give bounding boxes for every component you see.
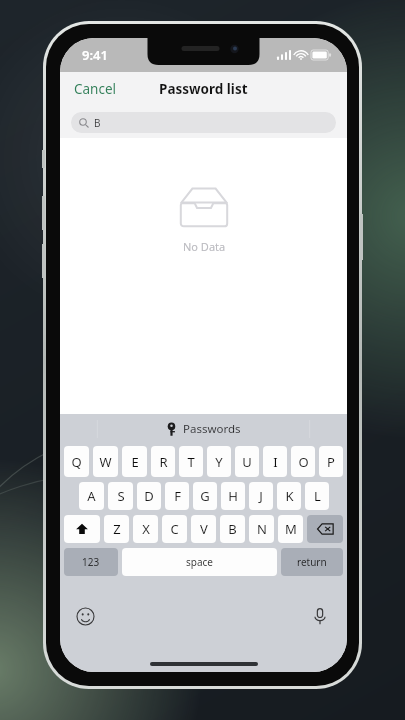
staticText: D [144,487,154,505]
staticText: U [242,453,252,471]
button[interactable]: B [220,515,245,543]
staticText: R [159,453,168,471]
button[interactable]: Q [64,446,89,477]
staticText: P [327,453,335,471]
staticText: F [174,487,181,505]
button[interactable]: T [179,446,203,477]
staticText: 123 [82,555,100,569]
button[interactable]: B [71,112,336,133]
button[interactable]: 123 [64,548,118,576]
button[interactable]: Backspace [307,515,343,543]
staticText: O [298,453,309,471]
staticText: return [297,555,327,569]
staticText: B [228,520,237,538]
button[interactable]: I [263,446,287,477]
staticText: M [285,520,297,538]
staticText: T [187,453,195,471]
button[interactable]: space [122,548,277,576]
staticText: No Data [183,239,226,254]
button[interactable]: K [277,482,301,510]
button[interactable]: M [278,515,303,543]
button[interactable]: G [193,482,217,510]
button[interactable]: H [221,482,245,510]
button[interactable]: E [122,446,147,477]
button[interactable]: J [249,482,273,510]
staticText: J [259,487,263,505]
staticText: Password list [159,80,248,98]
staticText: E [131,453,139,471]
button[interactable]: L [305,482,329,510]
button[interactable]: Passwords [60,414,347,444]
button[interactable]: X [133,515,158,543]
staticText: S [117,487,125,505]
button[interactable]: S [108,482,133,510]
button[interactable]: Z [104,515,129,543]
staticText: 9:41 [82,46,108,64]
staticText: Z [113,520,121,538]
button[interactable]: Dictation [307,603,333,629]
staticText: Y [215,453,223,471]
button[interactable]: O [291,446,315,477]
button[interactable]: Y [207,446,231,477]
button[interactable]: C [162,515,187,543]
button[interactable]: D [137,482,161,510]
staticText: Q [71,453,82,471]
button[interactable]: F [165,482,189,510]
staticText: K [285,487,294,505]
staticText: Passwords [183,421,241,437]
staticText: B [94,116,101,130]
staticText: X [142,520,150,538]
staticText: V [200,520,208,538]
staticText: A [87,487,96,505]
staticText: Cancel [74,80,117,98]
button[interactable]: N [249,515,274,543]
button[interactable]: Emoji [72,603,98,629]
staticText: L [314,487,321,505]
button[interactable]: V [191,515,216,543]
staticText: I [273,453,278,471]
button[interactable]: P [319,446,343,477]
button[interactable]: W [93,446,118,477]
button[interactable]: Cancel [60,74,131,104]
staticText: H [228,487,238,505]
staticText: space [186,555,213,569]
staticText: N [257,520,267,538]
button[interactable]: Shift [64,515,100,543]
button[interactable]: A [79,482,104,510]
staticText: C [170,520,179,538]
staticText: W [99,453,112,471]
staticText: G [200,487,210,505]
button[interactable]: U [235,446,259,477]
button[interactable]: return [281,548,343,576]
button[interactable]: R [151,446,175,477]
